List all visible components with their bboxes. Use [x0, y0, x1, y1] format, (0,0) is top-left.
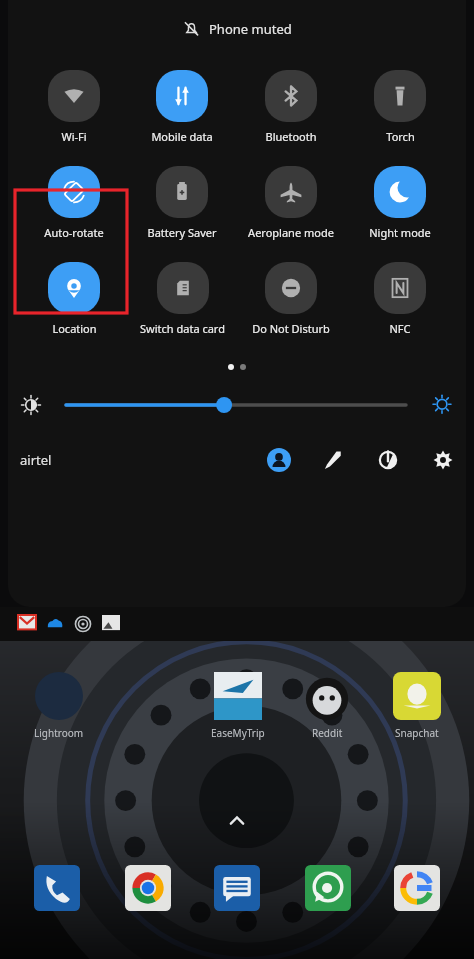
button[interactable]: Chrome — [125, 865, 171, 911]
staticText: Wi-Fi — [61, 129, 87, 144]
button[interactable]: Google — [394, 865, 440, 911]
button[interactable]: Torch — [374, 70, 426, 144]
button[interactable]: Snapchat — [388, 672, 446, 740]
button[interactable]: Open app drawer — [226, 810, 248, 832]
button[interactable]: Power — [377, 449, 399, 471]
staticText: NFC — [389, 321, 411, 336]
button[interactable]: Wi-Fi — [48, 70, 100, 144]
button[interactable]: Reddit — [298, 672, 356, 740]
staticText: Switch data card — [140, 321, 225, 336]
button[interactable]: Phone — [34, 865, 80, 911]
staticText: Snapchat — [395, 726, 439, 740]
staticText: airtel — [20, 451, 52, 469]
button[interactable]: Do Not Disturb — [252, 262, 330, 336]
button[interactable]: Battery Saver — [147, 166, 217, 240]
button[interactable] — [66, 393, 406, 417]
staticText: Aeroplane mode — [248, 225, 334, 240]
button[interactable]: Messages — [214, 865, 260, 911]
staticText: Auto-rotate — [44, 225, 104, 240]
button[interactable]: Switch data card — [140, 262, 225, 336]
staticText: Night mode — [369, 225, 431, 240]
staticText: Reddit — [312, 726, 343, 740]
staticText: EaseMyTrip — [211, 726, 265, 740]
button[interactable]: Auto-rotate — [44, 166, 104, 240]
other: Auto brightness — [430, 393, 454, 417]
staticText: Location — [52, 321, 97, 336]
staticText: Phone muted — [209, 20, 292, 38]
button[interactable]: NFC — [374, 262, 426, 336]
staticText: Mobile data — [151, 129, 213, 144]
staticText: Lightroom — [34, 726, 84, 740]
button[interactable]: Lightroom — [30, 672, 88, 740]
button[interactable]: Settings — [432, 449, 454, 471]
button[interactable]: Edit tiles — [322, 449, 344, 471]
staticText: Torch — [386, 129, 415, 144]
button[interactable]: Night mode — [369, 166, 431, 240]
button[interactable]: Location — [48, 262, 100, 336]
other: Low brightness — [20, 394, 42, 416]
staticText: Do Not Disturb — [252, 321, 330, 336]
button[interactable]: Phone muted — [8, 0, 466, 58]
button[interactable]: WhatsApp — [305, 865, 351, 911]
button[interactable]: Mobile data — [151, 70, 213, 144]
staticText: Bluetooth — [265, 129, 317, 144]
button[interactable]: EaseMyTrip — [209, 672, 267, 740]
button[interactable]: Bluetooth — [265, 70, 317, 144]
button[interactable]: User — [267, 448, 291, 472]
button[interactable]: Aeroplane mode — [248, 166, 334, 240]
staticText: Battery Saver — [147, 225, 217, 240]
